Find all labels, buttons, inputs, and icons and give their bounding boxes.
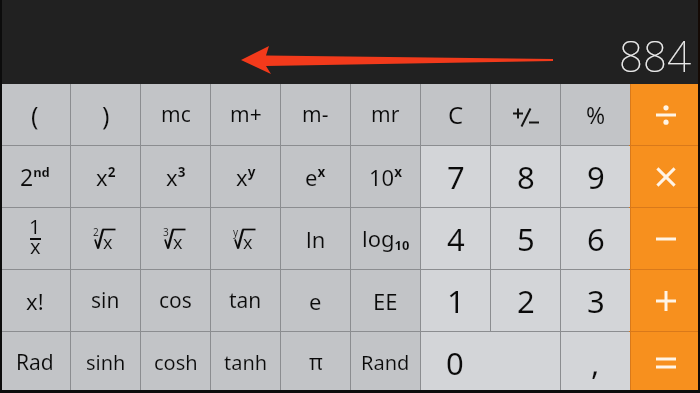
- button[interactable]: 2: [491, 270, 560, 331]
- button[interactable]: Rad: [0, 332, 70, 393]
- staticText: 1: [447, 280, 465, 322]
- button[interactable]: tan: [211, 270, 280, 331]
- staticText: 0: [446, 342, 464, 384]
- button[interactable]: x3: [141, 146, 210, 207]
- button[interactable]: Root of order 3: [141, 208, 210, 269]
- button[interactable]: ): [71, 84, 140, 145]
- staticText: cosh: [154, 349, 198, 376]
- button[interactable]: tanh: [211, 332, 280, 393]
- button[interactable]: EE: [351, 270, 420, 331]
- staticText: 9: [587, 156, 605, 198]
- button[interactable]: x2: [71, 146, 140, 207]
- button[interactable]: Root of order y: [211, 208, 280, 269]
- staticText: Rad: [16, 348, 54, 377]
- staticText: xy: [236, 162, 256, 192]
- button[interactable]: Plus: [631, 270, 700, 331]
- button[interactable]: ln: [281, 208, 350, 269]
- button[interactable]: Toggle sign: [491, 84, 560, 145]
- button[interactable]: C: [421, 84, 490, 145]
- staticText: 4: [447, 218, 465, 260]
- button[interactable]: Multiply: [631, 146, 700, 207]
- staticText: x3: [166, 162, 186, 192]
- staticText: x: [173, 230, 183, 255]
- staticText: 5: [517, 218, 535, 260]
- button[interactable]: π: [281, 332, 350, 393]
- staticText: C: [448, 98, 464, 131]
- button[interactable]: ex: [281, 146, 350, 207]
- button[interactable]: 9: [561, 146, 630, 207]
- button[interactable]: ,: [561, 332, 630, 393]
- staticText: 2nd: [20, 161, 50, 192]
- staticText: x2: [96, 162, 116, 192]
- button[interactable]: 8: [491, 146, 560, 207]
- staticText: 7: [447, 156, 465, 198]
- button[interactable]: m-: [281, 84, 350, 145]
- button[interactable]: cos: [141, 270, 210, 331]
- staticText: 6: [587, 218, 605, 260]
- button[interactable]: 5: [491, 208, 560, 269]
- button[interactable]: m+: [211, 84, 280, 145]
- button[interactable]: 10x: [351, 146, 420, 207]
- staticText: tanh: [224, 349, 268, 376]
- button[interactable]: e: [281, 270, 350, 331]
- staticText: tan: [229, 286, 262, 315]
- staticText: mr: [371, 100, 400, 129]
- button[interactable]: 0: [421, 332, 560, 393]
- staticText: (: [31, 98, 39, 132]
- staticText: EE: [373, 286, 398, 316]
- staticText: π: [309, 348, 323, 377]
- staticText: m+: [230, 100, 262, 129]
- button[interactable]: x!: [0, 270, 70, 331]
- button[interactable]: (: [0, 84, 70, 145]
- staticText: 2: [517, 280, 535, 322]
- button[interactable]: 6: [561, 208, 630, 269]
- button[interactable]: Equals: [631, 332, 700, 393]
- staticText: ex: [305, 162, 326, 192]
- staticText: Rand: [361, 349, 410, 376]
- button[interactable]: log10: [351, 208, 420, 269]
- button[interactable]: Divide: [631, 84, 700, 145]
- button[interactable]: Rand: [351, 332, 420, 393]
- button[interactable]: mc: [141, 84, 210, 145]
- staticText: sin: [91, 286, 120, 315]
- staticText: 3: [163, 225, 169, 239]
- staticText: log10: [362, 223, 410, 254]
- button[interactable]: mr: [351, 84, 420, 145]
- staticText: 884: [619, 27, 691, 84]
- button[interactable]: sin: [71, 270, 140, 331]
- button[interactable]: cosh: [141, 332, 210, 393]
- button[interactable]: sinh: [71, 332, 140, 393]
- button[interactable]: Minus: [631, 208, 700, 269]
- staticText: x: [103, 230, 113, 255]
- staticText: 8: [517, 156, 535, 198]
- staticText: 3: [587, 280, 605, 322]
- staticText: e: [309, 286, 322, 316]
- button[interactable]: 2nd: [0, 146, 70, 207]
- staticText: 10x: [369, 162, 402, 192]
- button[interactable]: 1: [0, 208, 70, 269]
- staticText: ln: [306, 224, 326, 254]
- staticText: y: [233, 225, 239, 239]
- staticText: mc: [161, 100, 191, 129]
- staticText: %: [586, 99, 606, 130]
- staticText: m-: [302, 100, 329, 129]
- staticText: x!: [26, 286, 44, 316]
- staticText: ,: [591, 342, 600, 384]
- button[interactable]: 3: [561, 270, 630, 331]
- staticText: ): [102, 98, 110, 132]
- staticText: x: [243, 230, 253, 255]
- button[interactable]: %: [561, 84, 630, 145]
- button[interactable]: 7: [421, 146, 490, 207]
- staticText: 2: [93, 225, 99, 239]
- staticText: sinh: [86, 349, 126, 376]
- staticText: x: [30, 233, 41, 260]
- button[interactable]: 1: [421, 270, 490, 331]
- staticText: 1: [29, 213, 41, 240]
- button[interactable]: Root of order 2: [71, 208, 140, 269]
- staticText: cos: [159, 286, 192, 315]
- button[interactable]: xy: [211, 146, 280, 207]
- button[interactable]: 4: [421, 208, 490, 269]
